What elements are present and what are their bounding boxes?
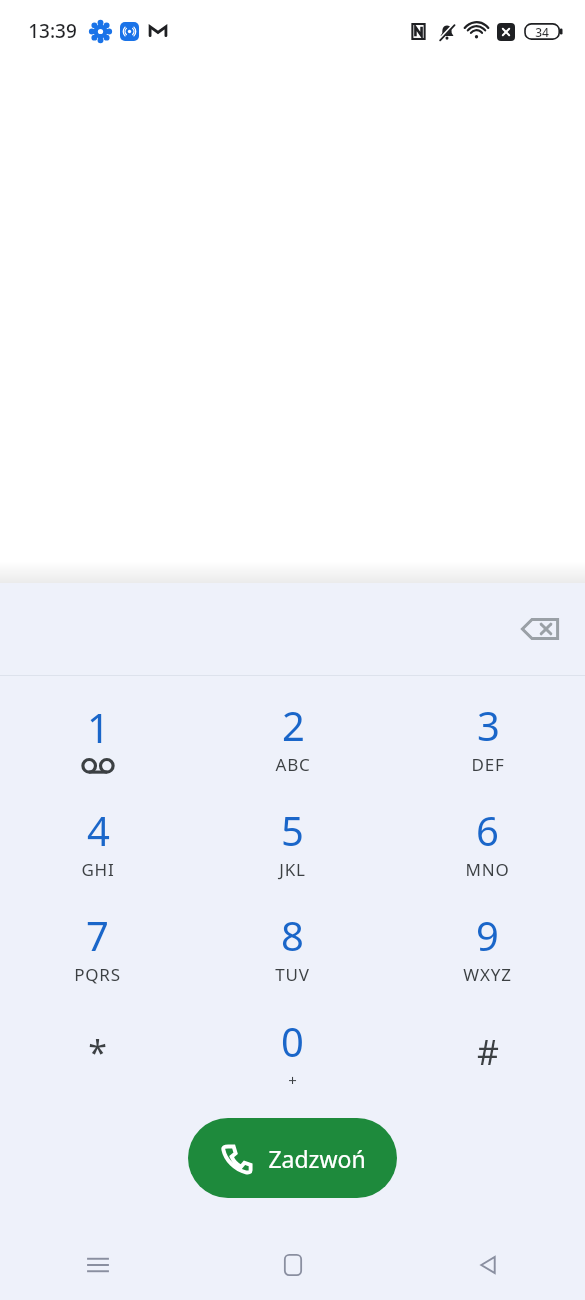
button[interactable]: 2 — [195, 684, 390, 789]
staticText: * — [88, 1029, 107, 1075]
button[interactable]: # — [390, 999, 585, 1104]
staticText: WXYZ — [463, 963, 512, 986]
staticText: ABC — [275, 753, 311, 776]
staticText: MNO — [465, 858, 510, 881]
button[interactable]: 8 — [195, 894, 390, 999]
staticText: JKL — [279, 858, 306, 881]
staticText: TUV — [275, 963, 310, 986]
staticText: + — [288, 1070, 298, 1090]
button[interactable]: Recent apps — [0, 1230, 195, 1300]
staticText: 1 — [87, 700, 110, 754]
button[interactable]: 3 — [390, 684, 585, 789]
button[interactable]: 1 — [0, 684, 195, 789]
staticText: GHI — [81, 858, 115, 881]
staticText: Zadzwoń — [268, 1143, 366, 1174]
staticText: 9 — [476, 908, 499, 962]
staticText: 6 — [476, 803, 499, 857]
staticText: 13:39 — [28, 18, 77, 44]
staticText: 0 — [281, 1014, 304, 1068]
button[interactable]: Home — [195, 1230, 390, 1300]
button[interactable]: 0 — [195, 999, 390, 1104]
button[interactable]: 6 — [390, 789, 585, 894]
button[interactable]: * — [0, 999, 195, 1104]
button[interactable]: 4 — [0, 789, 195, 894]
staticText: 5 — [281, 803, 304, 857]
button[interactable]: 5 — [195, 789, 390, 894]
button[interactable]: 9 — [390, 894, 585, 999]
staticText: 7 — [86, 908, 109, 962]
staticText: DEF — [471, 753, 505, 776]
button[interactable]: Backspace — [511, 600, 569, 658]
staticText: 34 — [535, 24, 549, 40]
staticText: PQRS — [74, 963, 121, 986]
button[interactable]: 7 — [0, 894, 195, 999]
button[interactable]: Zadzwoń — [188, 1118, 397, 1198]
staticText: # — [477, 1029, 499, 1075]
staticText: 3 — [477, 698, 500, 752]
staticText: 4 — [87, 803, 110, 857]
button[interactable]: Back — [390, 1230, 585, 1300]
staticText: 8 — [281, 908, 304, 962]
staticText: 2 — [282, 698, 305, 752]
